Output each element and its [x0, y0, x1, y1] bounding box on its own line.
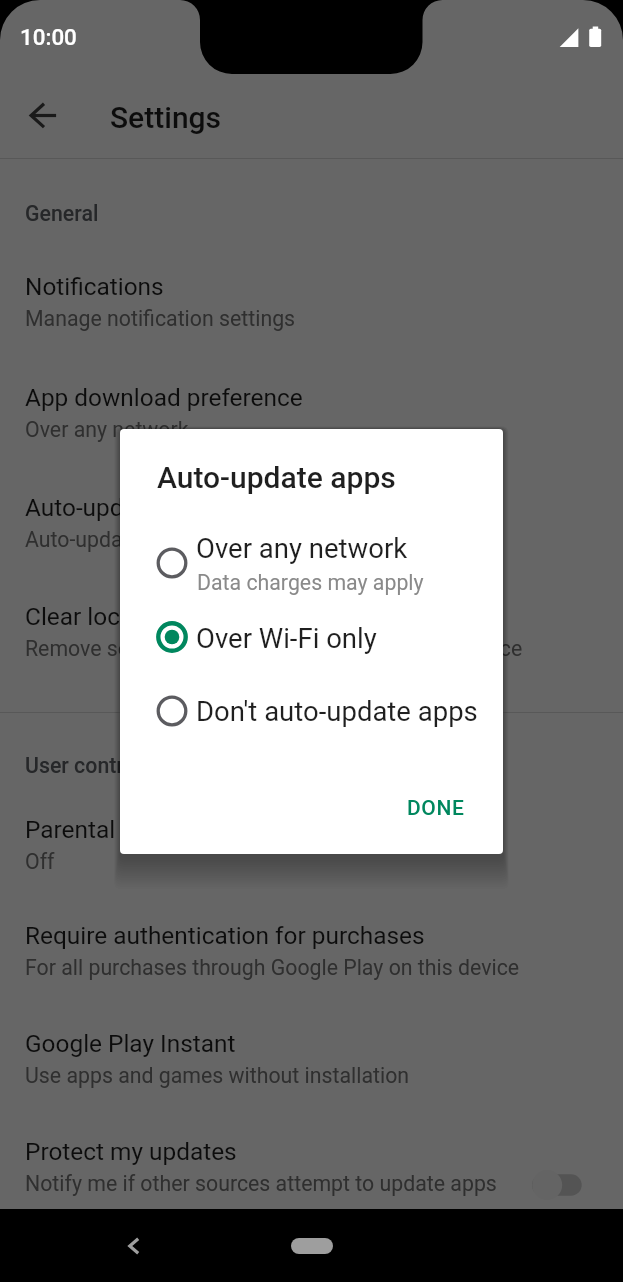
- staticText: Auto-update apps over Wi-Fi only: [25, 527, 336, 552]
- staticText: Manage notification settings: [25, 306, 296, 331]
- staticText: Auto-update apps: [157, 460, 396, 495]
- button[interactable]: Navigate up: [21, 93, 66, 138]
- staticText: Parental controls: [25, 815, 210, 844]
- staticText: Remove searches you have performed on th…: [25, 636, 523, 661]
- button[interactable]: DONE: [390, 781, 486, 833]
- staticText: Notify me if other sources attempt to up…: [25, 1171, 497, 1196]
- button[interactable]: Require authentication for purchases: [0, 899, 623, 992]
- staticText: Don't auto-update apps: [196, 695, 478, 727]
- staticText: App download preference: [25, 383, 303, 412]
- staticText: Settings: [110, 100, 222, 135]
- button[interactable]: Protect my updates: [0, 1115, 623, 1208]
- staticText: Off: [25, 849, 55, 874]
- staticText: Over any network: [25, 417, 189, 442]
- staticText: User controls: [25, 753, 153, 778]
- staticText: DONE: [407, 796, 465, 821]
- staticText: Over any network: [196, 532, 408, 564]
- staticText: For all purchases through Google Play on…: [25, 955, 520, 980]
- staticText: Use apps and games without installation: [25, 1063, 410, 1088]
- staticText: Require authentication for purchases: [25, 921, 425, 950]
- button[interactable]: Clear local search history: [0, 580, 623, 673]
- button[interactable]: Home: [291, 1238, 333, 1254]
- button[interactable]: Google Play Instant: [0, 1007, 623, 1100]
- button[interactable]: Notifications: [0, 250, 623, 343]
- button[interactable]: Back: [114, 1226, 154, 1266]
- button[interactable]: Over Wi-Fi only: [120, 615, 503, 675]
- staticText: 10:00: [20, 24, 77, 50]
- staticText: Auto-update apps: [25, 493, 217, 522]
- button[interactable]: Auto-update apps: [0, 471, 623, 564]
- staticText: Over Wi-Fi only: [196, 622, 377, 654]
- button[interactable]: Over any network: [120, 526, 503, 600]
- button[interactable]: Don't auto-update apps: [120, 684, 503, 744]
- staticText: Protect my updates: [25, 1137, 237, 1166]
- button[interactable]: App download preference: [0, 361, 623, 454]
- staticText: Notifications: [25, 272, 164, 301]
- staticText: Clear local search history: [25, 602, 298, 631]
- staticText: Data charges may apply: [197, 570, 424, 595]
- staticText: Google Play Instant: [25, 1029, 236, 1058]
- staticText: General: [25, 201, 99, 226]
- button[interactable]: Parental controls: [0, 793, 623, 886]
